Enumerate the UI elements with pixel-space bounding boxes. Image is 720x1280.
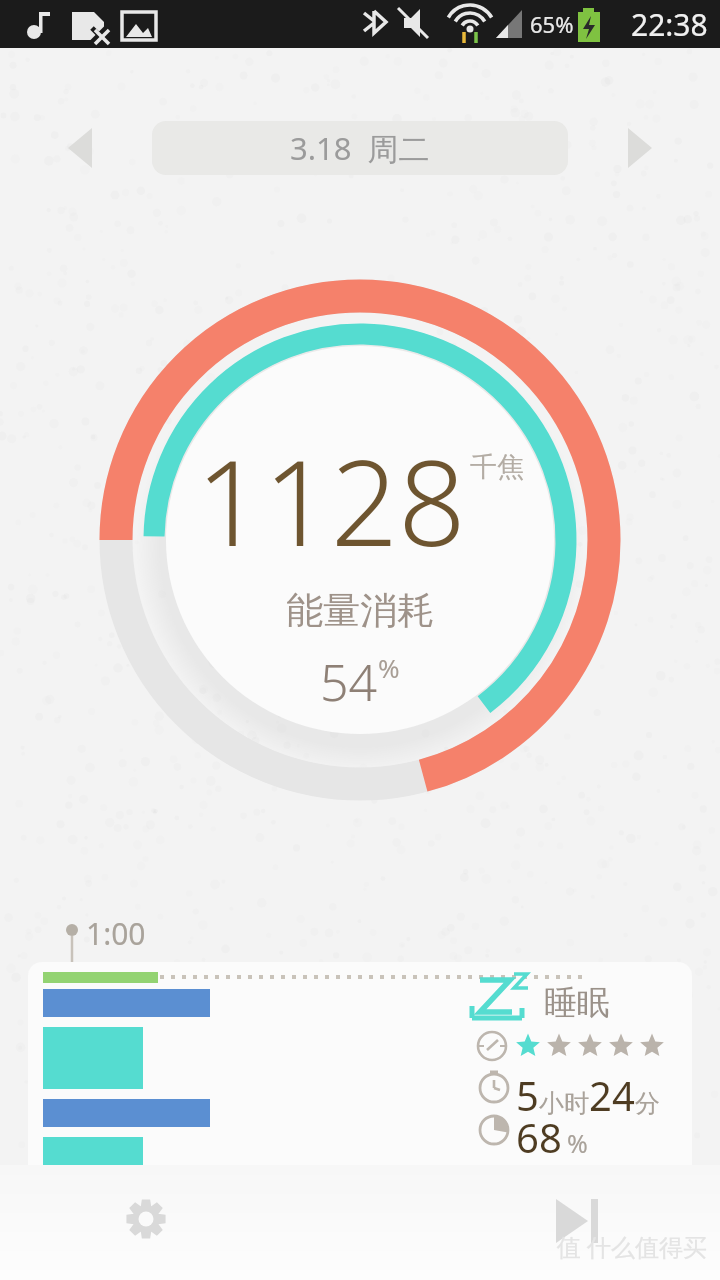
- button[interactable]: Previous day: [58, 126, 102, 170]
- staticText: 22:38: [631, 4, 708, 45]
- staticText: 小时: [539, 1088, 589, 1119]
- staticText: 千焦: [470, 450, 524, 484]
- button[interactable]: 睡眠: [28, 962, 692, 1165]
- staticText: 睡眠: [544, 982, 610, 1024]
- staticText: 分: [635, 1088, 660, 1119]
- staticText: 24: [589, 1068, 635, 1122]
- staticText: %: [567, 1126, 588, 1160]
- staticText: 3.18 周二: [290, 127, 430, 169]
- staticText: 能量消耗: [286, 587, 434, 634]
- staticText: 1128: [196, 420, 466, 581]
- button[interactable]: Settings: [105, 1178, 187, 1260]
- staticText: 54: [320, 648, 378, 716]
- staticText: 1:00: [86, 913, 146, 954]
- staticText: 值 什么值得买: [556, 1230, 707, 1263]
- button[interactable]: Next day: [618, 126, 662, 170]
- staticText: 68: [516, 1110, 562, 1164]
- button[interactable]: 3.18 周二: [152, 121, 568, 175]
- staticText: 5: [516, 1068, 539, 1122]
- staticText: %: [378, 650, 400, 685]
- button[interactable]: Next: [535, 1178, 617, 1260]
- staticText: 65%: [530, 9, 574, 39]
